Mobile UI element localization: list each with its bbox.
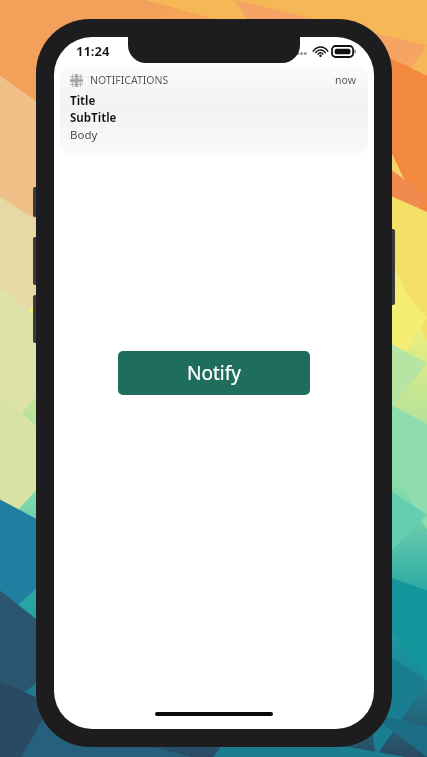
- button[interactable]: NOTIFICATIONS: [60, 65, 368, 155]
- staticText: Notify: [187, 360, 241, 386]
- staticText: Title: [70, 93, 96, 109]
- staticText: SubTitle: [70, 110, 117, 126]
- staticText: 11:24: [76, 42, 110, 60]
- staticText: now: [335, 73, 356, 87]
- staticText: Body: [70, 127, 98, 143]
- staticText: NOTIFICATIONS: [90, 73, 169, 87]
- button[interactable]: Notify: [118, 351, 310, 395]
